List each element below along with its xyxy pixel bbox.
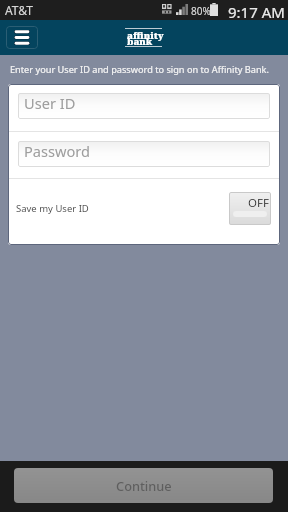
staticText: Enter your User ID and password to sign … <box>10 63 269 76</box>
staticText: User ID <box>24 93 76 113</box>
button[interactable]: Open navigation menu <box>6 26 38 49</box>
staticText: Continue <box>116 477 172 494</box>
button[interactable]: User ID <box>18 93 270 119</box>
staticText: Save my User ID <box>16 202 89 215</box>
button[interactable]: Password <box>18 141 270 167</box>
button[interactable]: Save my User ID toggle, off <box>229 192 271 225</box>
staticText: 80% <box>191 4 211 18</box>
button[interactable]: Continue <box>14 468 273 503</box>
staticText: affinity <box>127 29 164 42</box>
staticText: AT&T <box>5 2 33 18</box>
staticText: 9:17 AM <box>228 2 285 22</box>
staticText: bank <box>127 35 153 48</box>
staticText: OFF <box>248 195 269 211</box>
staticText: Password <box>24 141 91 161</box>
